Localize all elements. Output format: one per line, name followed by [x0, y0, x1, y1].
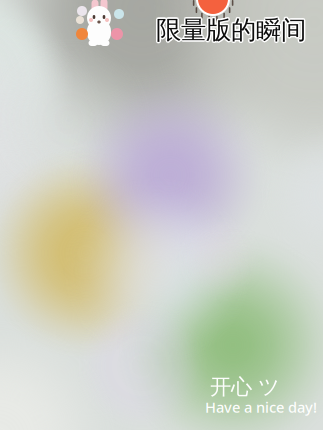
staticText: 限量版的瞬间 [157, 15, 307, 47]
staticText: Have a nice day! [205, 397, 317, 417]
staticText: 限量版的瞬间 [155, 13, 305, 44]
staticText: 限量版的瞬间 [156, 14, 306, 45]
staticText: 限量版的瞬间 [155, 15, 305, 47]
staticText: 限量版的瞬间 [154, 14, 304, 45]
staticText: 限量版的瞬间 [157, 13, 307, 44]
staticText: 开心 ツ [210, 374, 280, 400]
staticText: 限量版的瞬间 [156, 13, 306, 44]
staticText: 限量版的瞬间 [157, 14, 307, 45]
staticText: 限量版的瞬间 [156, 16, 306, 47]
